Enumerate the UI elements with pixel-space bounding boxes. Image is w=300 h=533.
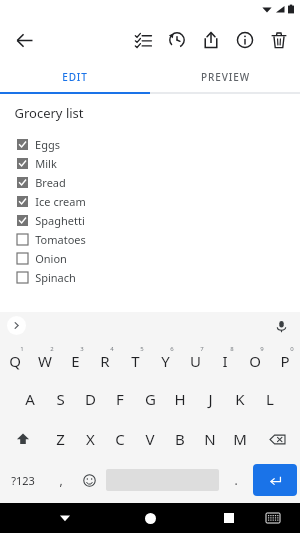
button[interactable]: Y — [150, 339, 180, 379]
staticText: P — [280, 351, 290, 371]
button[interactable]: C — [105, 419, 135, 459]
button[interactable]: A — [15, 379, 45, 419]
button[interactable]: B — [165, 419, 195, 459]
button[interactable]: H — [165, 379, 195, 419]
button[interactable]: K — [225, 379, 255, 419]
staticText: EDIT — [62, 70, 88, 84]
button[interactable]: F — [105, 379, 135, 419]
staticText: Spaghetti — [35, 213, 85, 228]
staticText: Y — [161, 351, 170, 371]
button[interactable]: Eggs — [14, 135, 300, 154]
staticText: 0 — [290, 345, 294, 353]
button[interactable]: Enter — [253, 464, 297, 496]
button[interactable]: Onion — [14, 249, 300, 268]
button[interactable]: Recents — [214, 503, 244, 533]
staticText: Bread — [35, 175, 66, 190]
button[interactable]: EDIT — [0, 62, 150, 92]
staticText: S — [56, 389, 65, 409]
staticText: E — [71, 351, 80, 371]
button[interactable]: D — [75, 379, 105, 419]
button[interactable]: Shift — [0, 419, 45, 459]
staticText: PREVIEW — [201, 70, 250, 84]
button[interactable]: PREVIEW — [150, 62, 300, 92]
button[interactable]: ?123 — [0, 459, 46, 501]
button[interactable]: I — [210, 339, 240, 379]
staticText: Grocery list — [14, 104, 84, 122]
staticText: R — [100, 351, 110, 371]
button[interactable]: R — [90, 339, 120, 379]
button[interactable]: Backspace — [255, 419, 300, 459]
staticText: . — [234, 472, 238, 488]
button[interactable]: , — [46, 459, 75, 501]
staticText: N — [204, 429, 216, 449]
staticText: H — [174, 389, 186, 409]
button[interactable]: Z — [45, 419, 75, 459]
button[interactable]: G — [135, 379, 165, 419]
staticText: G — [145, 389, 156, 409]
button[interactable]: Delete — [262, 23, 296, 57]
button[interactable]: Hide keyboard — [50, 503, 80, 533]
button[interactable]: Spinach — [14, 268, 300, 287]
button[interactable]: Share — [194, 23, 228, 57]
staticText: I — [222, 351, 228, 371]
staticText: X — [86, 429, 95, 449]
staticText: 7 — [200, 345, 204, 353]
button[interactable]: Voice input — [270, 315, 292, 337]
button[interactable]: Back — [6, 22, 42, 58]
staticText: Z — [56, 429, 65, 449]
button[interactable]: Emoji — [75, 459, 104, 501]
button[interactable]: History — [160, 23, 194, 57]
staticText: 6 — [170, 345, 174, 353]
staticText: 1 — [20, 345, 24, 353]
staticText: Q — [9, 351, 21, 371]
button[interactable]: O — [240, 339, 270, 379]
staticText: Milk — [35, 156, 57, 171]
staticText: F — [116, 389, 124, 409]
staticText: A — [25, 389, 35, 409]
button[interactable]: X — [75, 419, 105, 459]
staticText: 4 — [110, 345, 114, 353]
staticText: T — [131, 351, 140, 371]
staticText: C — [115, 429, 125, 449]
staticText: K — [235, 389, 245, 409]
button[interactable]: S — [45, 379, 75, 419]
button[interactable]: J — [195, 379, 225, 419]
staticText: D — [85, 389, 96, 409]
button[interactable]: M — [225, 419, 255, 459]
button[interactable]: Ice cream — [14, 192, 300, 211]
button[interactable]: P — [270, 339, 300, 379]
staticText: Tomatoes — [35, 232, 86, 247]
button[interactable]: Checklist — [126, 23, 160, 57]
staticText: U — [190, 351, 201, 371]
staticText: Onion — [35, 251, 67, 266]
button[interactable]: Bread — [14, 173, 300, 192]
staticText: 2 — [50, 345, 54, 353]
button[interactable]: W — [30, 339, 60, 379]
staticText: 3 — [80, 345, 84, 353]
button[interactable]: E — [60, 339, 90, 379]
button[interactable]: Q — [0, 339, 30, 379]
staticText: B — [175, 429, 185, 449]
staticText: Ice cream — [35, 194, 86, 209]
button[interactable]: . — [221, 459, 250, 501]
button[interactable]: Expand suggestions — [7, 316, 26, 335]
staticText: ?123 — [11, 473, 35, 488]
button[interactable]: N — [195, 419, 225, 459]
staticText: M — [233, 429, 247, 449]
staticText: , — [59, 472, 63, 488]
staticText: J — [208, 389, 213, 409]
button[interactable]: Home — [135, 503, 165, 533]
button[interactable]: T — [120, 339, 150, 379]
button[interactable]: L — [255, 379, 285, 419]
button[interactable]: Info — [228, 23, 262, 57]
staticText: 9 — [260, 345, 264, 353]
button[interactable]: Spaghetti — [14, 211, 300, 230]
button[interactable]: Tomatoes — [14, 230, 300, 249]
staticText: V — [145, 429, 155, 449]
staticText: O — [249, 351, 261, 371]
button[interactable]: Switch keyboard — [260, 505, 286, 531]
button[interactable]: V — [135, 419, 165, 459]
button[interactable]: U — [180, 339, 210, 379]
button[interactable]: Milk — [14, 154, 300, 173]
